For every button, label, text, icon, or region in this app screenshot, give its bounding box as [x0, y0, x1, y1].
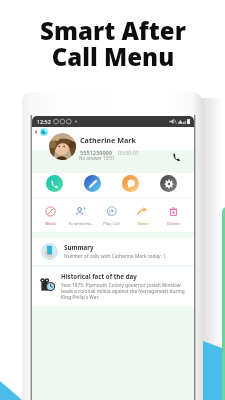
staticText: Block: [45, 221, 56, 227]
button[interactable]: Delete: [159, 206, 188, 227]
button[interactable]: Block: [36, 206, 65, 227]
button[interactable]: Call: [46, 175, 63, 192]
staticText: Summary: [64, 243, 94, 251]
staticText: No answer 13:51: [79, 155, 115, 161]
staticText: Share: [137, 221, 149, 227]
staticText: 12:52: [37, 118, 51, 125]
staticText: 00:00:07: [118, 149, 139, 156]
button[interactable]: Message: [122, 175, 139, 192]
staticText: Number of calls with Catherine Mark toda…: [64, 253, 166, 260]
button[interactable]: Back: [32, 128, 40, 136]
button[interactable]: Settings: [160, 175, 177, 192]
button[interactable]: Call back: [172, 152, 182, 162]
staticText: To whitelist...: [68, 221, 94, 227]
staticText: Historical fact of the day: [61, 272, 137, 280]
button[interactable]: To whitelist...: [66, 206, 95, 227]
button[interactable]: Summary: [32, 238, 194, 265]
staticText: 5551239999: [80, 149, 112, 157]
staticText: Year 1675, Plymouth Colony governor Josi…: [61, 282, 186, 300]
button[interactable]: Edit: [84, 175, 101, 192]
staticText: Play Call: [103, 221, 120, 227]
button[interactable]: Share: [128, 206, 157, 227]
button[interactable]: Play Call: [97, 206, 126, 227]
button[interactable]: Historical fact of the day: [32, 267, 194, 306]
staticText: Delete: [167, 221, 180, 227]
staticText: Smart After Call Menu: [40, 14, 186, 73]
staticText: Catherine Mark: [80, 135, 136, 145]
